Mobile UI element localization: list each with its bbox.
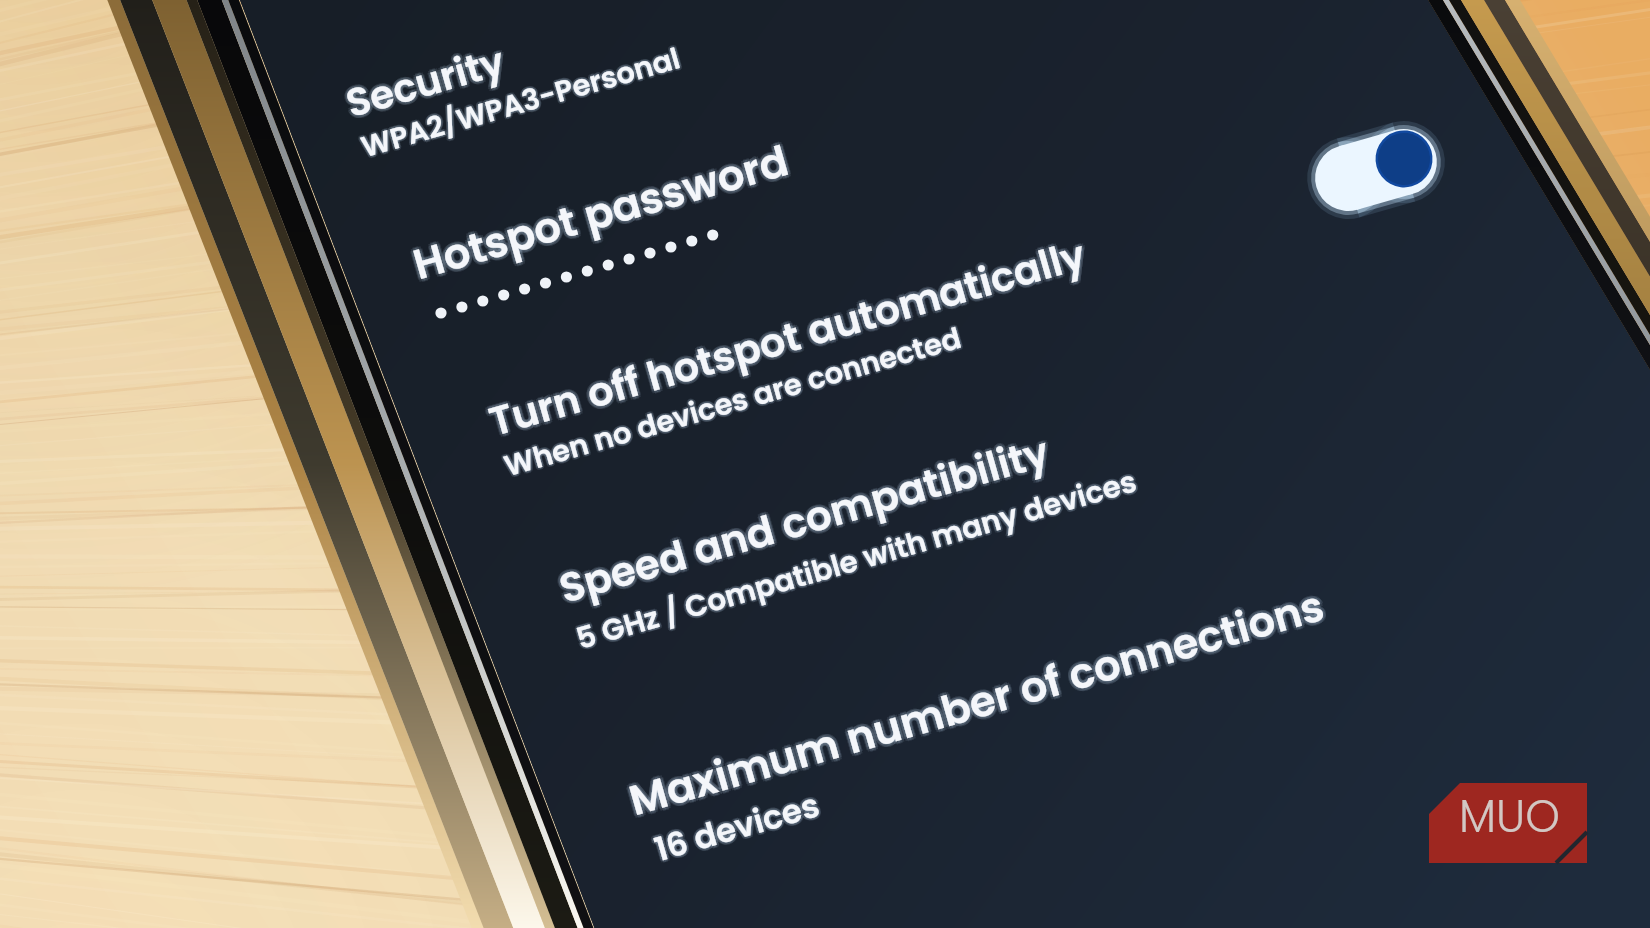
button[interactable]: Hotspot settings screen <box>0 0 1650 928</box>
